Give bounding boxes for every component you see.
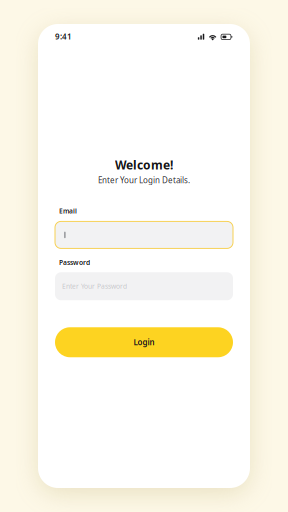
staticText: 9:41 [55, 31, 72, 42]
staticText: Email [59, 207, 77, 215]
staticText: Enter Your Password [62, 282, 127, 291]
button[interactable]: Login [55, 327, 233, 357]
staticText: Welcome! [115, 157, 173, 173]
staticText: Enter Your Login Details. [98, 175, 190, 185]
staticText: Login [133, 337, 154, 348]
staticText: Password [59, 258, 90, 267]
